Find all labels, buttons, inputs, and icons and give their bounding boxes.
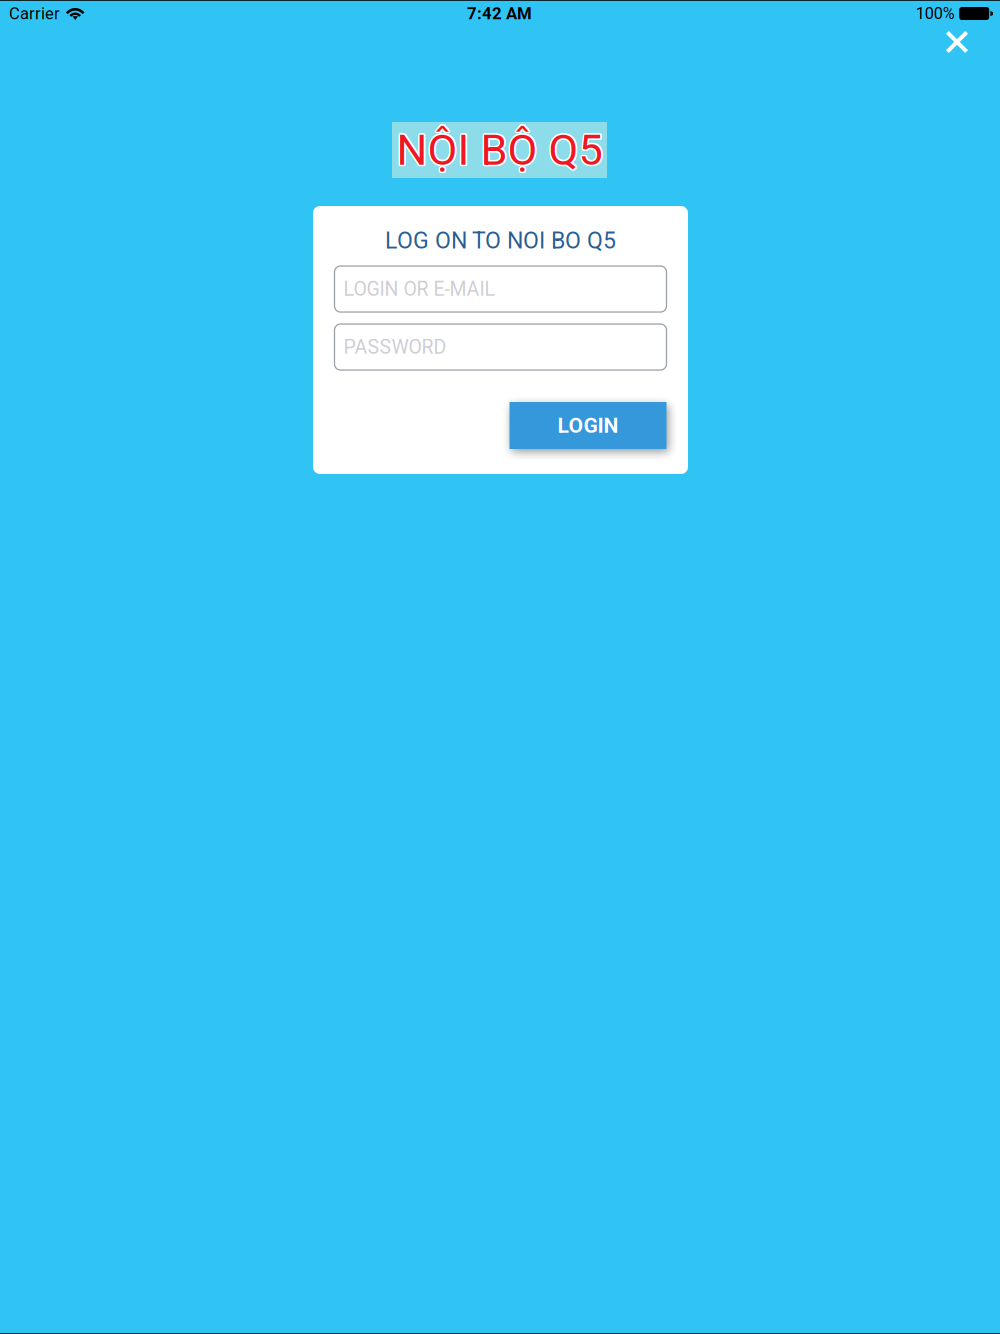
staticText: NỘI BỘ Q5 (398, 125, 604, 175)
staticText: NỘI BỘ Q5 (398, 123, 604, 174)
staticText: Carrier (9, 4, 60, 23)
button[interactable]: Close (934, 22, 980, 62)
staticText: NỘI BỘ Q5 (398, 126, 604, 176)
staticText: NỘI BỘ Q5 (396, 123, 602, 174)
staticText: LOGIN (557, 413, 618, 438)
staticText: NỘI BỘ Q5 (395, 126, 601, 176)
staticText: NỘI BỘ Q5 (395, 123, 601, 174)
staticText: NỘI BỘ Q5 (396, 125, 602, 175)
staticText: 7:42 AM (467, 4, 532, 23)
staticText: 100% (916, 4, 955, 23)
staticText: LOGIN OR E-MAIL (343, 278, 494, 300)
staticText: NỘI BỘ Q5 (396, 126, 602, 177)
staticText: NỘI BỘ Q5 (395, 125, 601, 175)
button[interactable]: LOGIN (509, 402, 666, 449)
button[interactable]: LOGIN OR E-MAIL (334, 266, 666, 312)
staticText: PASSWORD (343, 336, 446, 358)
staticText: LOG ON TO NOI BO Q5 (385, 227, 616, 254)
button[interactable]: PASSWORD (334, 324, 666, 370)
